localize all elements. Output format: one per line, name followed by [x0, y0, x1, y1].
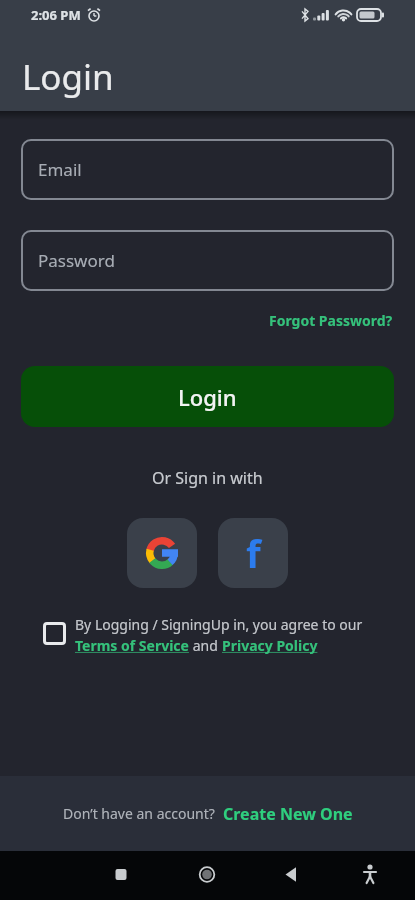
button[interactable]: f: [218, 518, 288, 588]
button[interactable]: Create New One: [223, 803, 353, 825]
button[interactable]: Forgot Password?: [269, 311, 393, 330]
button[interactable]: [159, 851, 208, 900]
staticText: Email: [38, 158, 82, 181]
button[interactable]: [347, 851, 396, 900]
staticText: f: [246, 527, 261, 579]
staticText: and: [189, 636, 222, 655]
staticText: Login: [178, 382, 237, 412]
button[interactable]: Email: [21, 139, 394, 200]
button[interactable]: Password: [21, 230, 394, 291]
button[interactable]: Login: [21, 366, 394, 427]
staticText: By Logging / SigningUp in, you agree to …: [75, 615, 363, 634]
staticText: Login: [22, 53, 114, 101]
staticText: Password: [38, 249, 115, 272]
staticText: 2:06 PM: [31, 6, 81, 24]
staticText: Don’t have an account?: [63, 804, 215, 823]
button[interactable]: Terms of Service: [75, 636, 189, 655]
button[interactable]: [253, 851, 302, 900]
button[interactable]: [127, 518, 197, 588]
button[interactable]: [43, 622, 66, 645]
staticText: Or Sign in with: [152, 467, 263, 489]
button[interactable]: Privacy Policy: [222, 636, 318, 655]
